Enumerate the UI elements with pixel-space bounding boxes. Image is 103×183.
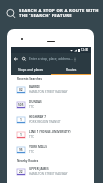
staticText: 1 — [20, 118, 22, 122]
button[interactable]: Routes — [51, 65, 91, 75]
button[interactable]: 95 — [11, 142, 91, 157]
staticText: Enter a stop, place, address... — [29, 57, 73, 61]
button[interactable]: 1 — [11, 127, 91, 142]
staticText: 12:30 — [81, 48, 89, 52]
button[interactable]: 505 — [11, 97, 91, 112]
staticText: Recents Searches — [17, 77, 43, 81]
button[interactable]: 02 — [11, 82, 91, 97]
staticText: 22 — [19, 170, 23, 174]
staticText: TTC — [29, 105, 35, 109]
staticText: BARRIE — [29, 85, 40, 89]
other: More options — [74, 57, 76, 62]
staticText: SEARCH A STOP OR A ROUTE WITH — [19, 8, 99, 14]
staticText: 505 — [18, 103, 24, 107]
button[interactable]: Stops and places — [11, 65, 51, 75]
staticText: 1 — [20, 133, 22, 137]
staticText: YORK MILLS — [29, 145, 47, 149]
staticText: HAMILTON STREET RAILWAY — [29, 172, 68, 176]
staticText: LINE 1 (YONGE-UNIVERSITY) — [29, 130, 71, 134]
button[interactable]: 1 — [11, 112, 91, 127]
staticText: YORK REGION TRANSIT — [29, 120, 61, 124]
staticText: TTC — [29, 150, 35, 154]
staticText: DUNDAS — [29, 100, 42, 104]
staticText: Routes — [66, 68, 77, 72]
staticText: HIGHWAY 7 — [29, 115, 46, 119]
staticText: 02 — [19, 88, 23, 92]
staticText: Stops and places — [18, 68, 44, 72]
button[interactable]: 22 — [11, 164, 91, 179]
staticText: THE 'SEARCH' FEATURE — [19, 13, 72, 19]
staticText: HAMILTON STREET RAILWAY — [29, 90, 68, 94]
staticText: Nearby Routes — [17, 159, 39, 163]
other: Back — [14, 57, 18, 61]
staticText: 95 — [19, 148, 23, 152]
staticText: UPPER JAMES — [29, 167, 49, 171]
staticText: TTC — [29, 135, 35, 139]
